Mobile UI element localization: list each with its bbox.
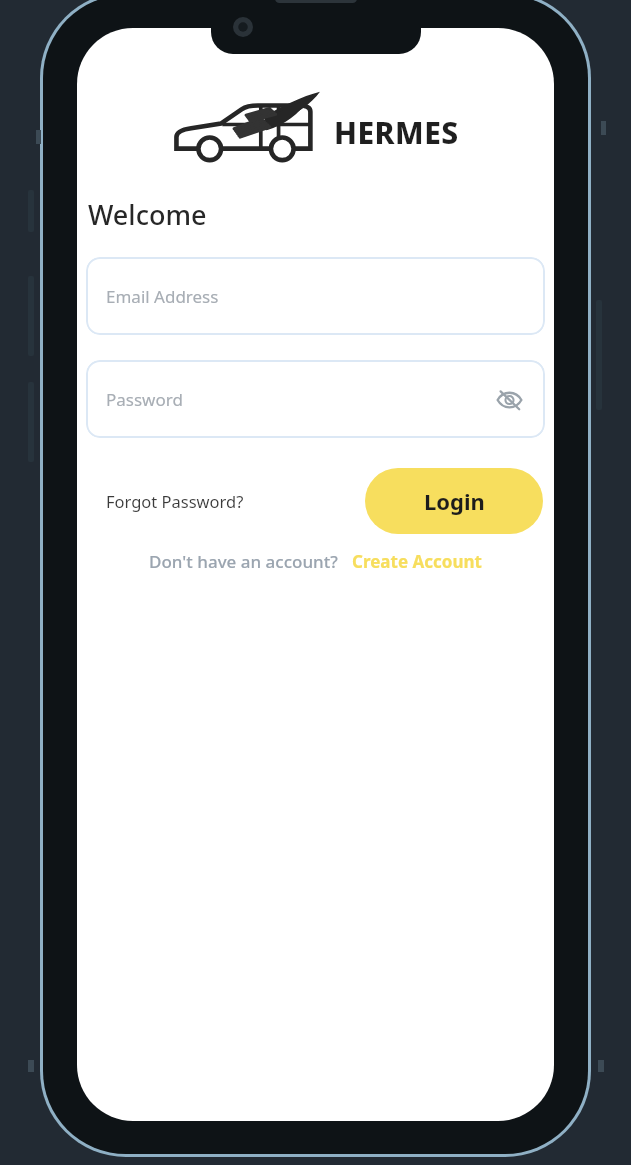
button[interactable]: Show password <box>489 379 529 419</box>
staticText: Email Address <box>106 285 219 308</box>
button[interactable]: Create Account <box>352 550 482 573</box>
staticText: Don't have an account? <box>149 550 338 573</box>
button[interactable]: Email Address <box>86 257 545 335</box>
staticText: Forgot Password? <box>106 490 244 512</box>
staticText: HERMES <box>334 112 459 153</box>
staticText: Create Account <box>352 550 482 573</box>
button[interactable]: Forgot Password? <box>88 482 262 520</box>
staticText: Welcome <box>88 196 207 233</box>
button[interactable]: Login <box>365 468 543 534</box>
button[interactable]: Password <box>86 360 545 438</box>
staticText: Login <box>424 486 485 516</box>
staticText: Password <box>106 388 183 411</box>
